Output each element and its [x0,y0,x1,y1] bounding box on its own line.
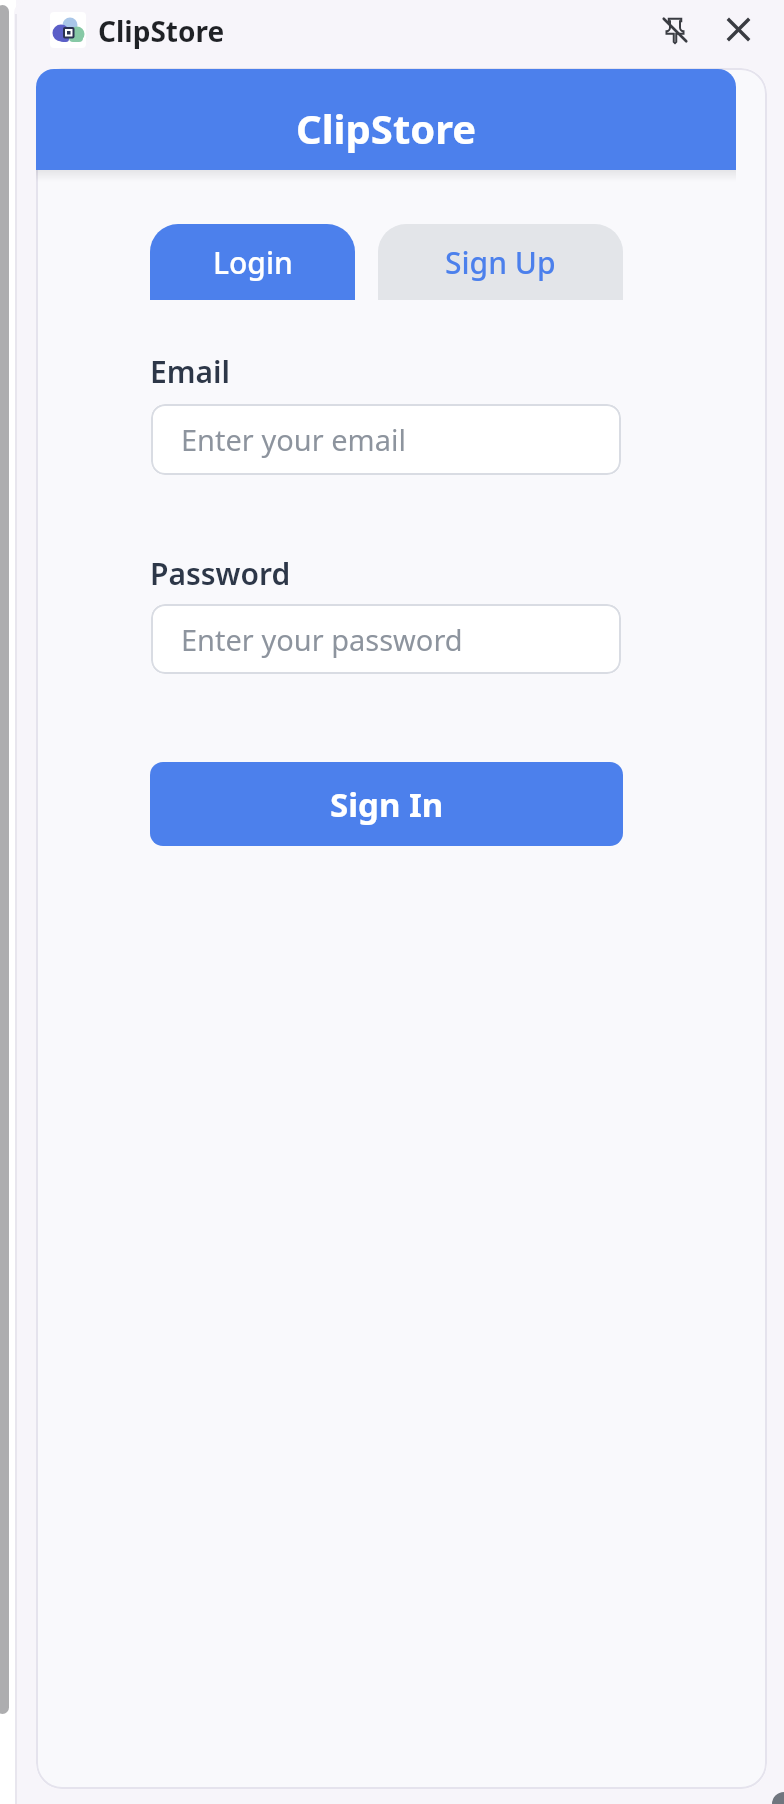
staticText: Sign Up [445,242,556,283]
staticText: Password [150,553,291,594]
staticText: Enter your password [181,620,463,659]
staticText: Email [150,351,231,392]
staticText: Login [213,242,293,283]
staticText: Enter your email [181,420,406,459]
staticText: ClipStore [296,101,477,155]
staticText: ClipStore [98,12,225,50]
staticText: Sign In [330,782,444,827]
